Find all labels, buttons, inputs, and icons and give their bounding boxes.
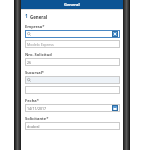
staticText: Modelo Express [27,42,54,47]
button[interactable]: General [21,0,123,9]
staticText: Solicitante* [25,116,49,121]
staticText: 14/11/2017 [27,106,47,111]
staticText: General [64,2,80,7]
staticText: dcabral [27,124,40,129]
button[interactable]: Clear [112,31,118,37]
staticText: Empresa* [25,24,45,29]
staticText: Sucursal* [25,70,45,75]
staticText: Nro. Solicitud [25,52,52,57]
button[interactable]: 26 [25,58,120,66]
button[interactable] [25,86,120,94]
button[interactable]: 14/11/2017 [25,104,120,112]
button[interactable]: Modelo Express [25,40,120,48]
button[interactable]: Pick date [112,105,118,111]
button[interactable] [25,76,120,84]
staticText: Fecha* [25,98,39,103]
staticText: 1 [25,13,28,20]
staticText: 26 [27,60,32,65]
staticText: General [30,14,48,20]
button[interactable]: Clear [25,30,120,38]
button[interactable]: dcabral [25,122,120,130]
